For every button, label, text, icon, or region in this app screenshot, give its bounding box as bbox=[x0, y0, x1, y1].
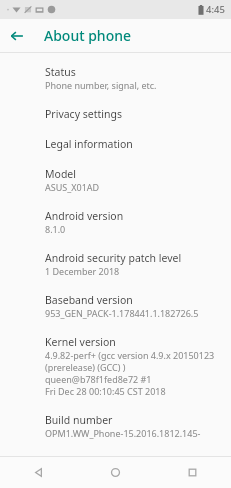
staticText: 4.9.82-perf+ (gcc version 4.9.x 20150123 bbox=[45, 349, 215, 361]
button[interactable]: Model bbox=[0, 159, 231, 201]
staticText: About phone bbox=[44, 26, 132, 45]
staticText: Build number bbox=[45, 413, 113, 427]
staticText: Model bbox=[45, 167, 76, 181]
button[interactable]: Build number bbox=[0, 405, 231, 447]
button[interactable]: Baseband version bbox=[0, 285, 231, 327]
staticText: Legal information bbox=[45, 137, 133, 151]
button[interactable]: Privacy settings bbox=[0, 99, 231, 129]
staticText: ASUS_X01AD bbox=[45, 181, 100, 193]
staticText: 1 December 2018 bbox=[45, 265, 120, 277]
staticText: Status bbox=[45, 65, 76, 79]
staticText: Phone number, signal, etc. bbox=[45, 79, 157, 91]
staticText: Kernel version bbox=[45, 335, 116, 349]
staticText: Android version bbox=[45, 209, 124, 223]
button[interactable]: Legal information bbox=[0, 129, 231, 159]
staticText: Fri Dec 28 00:10:45 CST 2018 bbox=[45, 385, 166, 397]
button[interactable]: Recent apps bbox=[154, 457, 231, 488]
staticText: Baseband version bbox=[45, 293, 133, 307]
button[interactable]: Android security patch level bbox=[0, 243, 231, 285]
button[interactable]: Back bbox=[0, 457, 77, 488]
staticText: Privacy settings bbox=[45, 107, 122, 121]
staticText: 953_GEN_PACK-1.178441.1.182726.5 bbox=[45, 307, 199, 319]
button[interactable]: Home bbox=[77, 457, 154, 488]
button[interactable]: Kernel version bbox=[0, 327, 231, 405]
staticText: Android security patch level bbox=[45, 251, 182, 265]
staticText: 4:45 bbox=[206, 3, 225, 16]
button[interactable]: Back bbox=[0, 19, 33, 52]
staticText: (prerelease) (GCC) ) bbox=[45, 361, 126, 373]
button[interactable]: Android version bbox=[0, 201, 231, 243]
staticText: OPM1.WW_Phone-15.2016.1812.145- bbox=[45, 427, 201, 439]
staticText: 8.1.0 bbox=[45, 223, 66, 235]
button[interactable]: Status bbox=[0, 57, 231, 99]
staticText: queen@b78f1fed8e72 #1 bbox=[45, 373, 152, 385]
